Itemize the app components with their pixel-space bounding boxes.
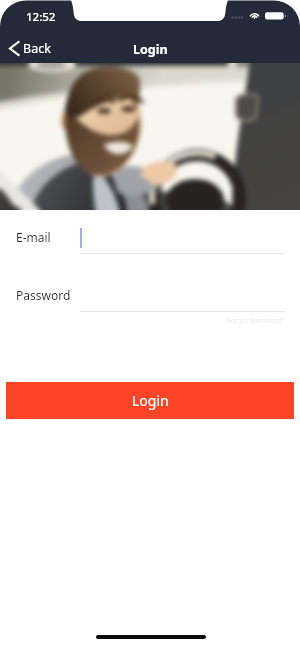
button[interactable]: Forgot password — [227, 316, 283, 326]
staticText: Login — [132, 391, 169, 410]
staticText: Login — [133, 41, 168, 58]
staticText: E-mail — [16, 229, 51, 245]
button[interactable]: Password — [0, 278, 300, 312]
button[interactable]: Back — [9, 35, 51, 61]
staticText: Password — [16, 287, 71, 303]
staticText: Back — [23, 40, 51, 57]
button[interactable]: Login — [6, 382, 294, 419]
staticText: 12:52 — [26, 9, 56, 25]
button[interactable]: E-mail — [0, 220, 300, 254]
